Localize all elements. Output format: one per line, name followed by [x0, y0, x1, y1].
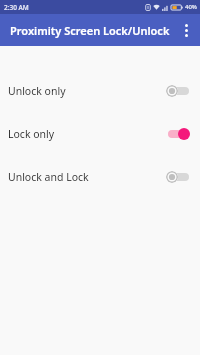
staticText: Unlock only [8, 84, 166, 98]
staticText: 2:30 AM [4, 3, 29, 12]
staticText: Unlock and Lock [8, 170, 166, 184]
button[interactable]: Off [166, 84, 190, 98]
button[interactable]: On [166, 127, 190, 141]
button[interactable]: Off [166, 170, 190, 184]
button[interactable]: Lock only [0, 112, 200, 155]
staticText: Lock only [8, 127, 166, 141]
button[interactable]: More options [172, 16, 200, 44]
staticText: Proximity Screen Lock/Unlock [10, 23, 170, 38]
staticText: 40% [185, 3, 197, 11]
button[interactable]: Unlock only [0, 69, 200, 112]
button[interactable]: Unlock and Lock [0, 155, 200, 198]
